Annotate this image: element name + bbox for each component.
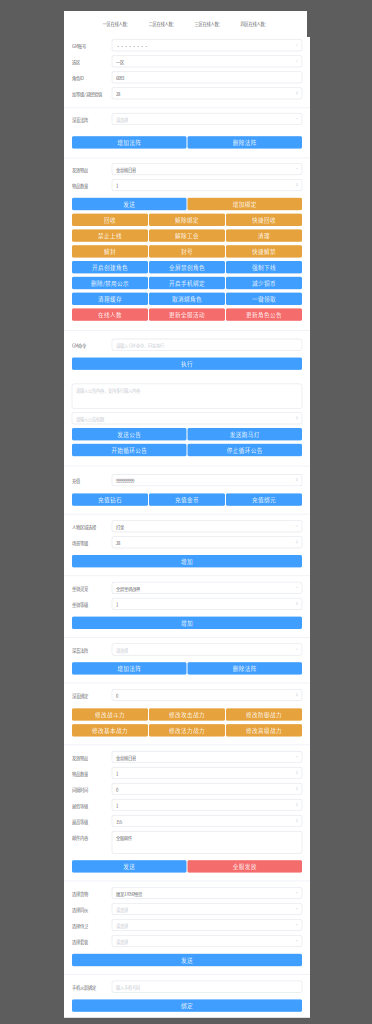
staticText: GM命令 xyxy=(72,342,86,349)
button[interactable]: 解封 xyxy=(72,245,148,258)
staticText: 执行 xyxy=(181,360,193,368)
button[interactable]: 在线人数 xyxy=(72,308,148,321)
staticText: 全服邮件 xyxy=(116,835,132,841)
button[interactable]: 增加 xyxy=(72,555,302,567)
button[interactable]: 强制下线 xyxy=(226,261,302,273)
staticText: 魔龙17050怪兽 xyxy=(116,891,142,897)
button[interactable]: 发送 xyxy=(72,198,186,210)
staticText: 删除法阵 xyxy=(233,138,257,146)
staticText: ⌄ xyxy=(295,937,299,942)
button[interactable]: 充值钻石 xyxy=(72,493,148,506)
button[interactable]: 封号 xyxy=(149,245,225,258)
button[interactable]: 开始循环公告 xyxy=(72,444,186,456)
staticText: 绑定 xyxy=(181,1001,193,1010)
button[interactable]: 增加法阵 xyxy=(72,662,186,675)
button[interactable]: 取消绑角色 xyxy=(149,293,225,305)
staticText: ⌄ xyxy=(295,889,299,894)
staticText: 全服发放 xyxy=(233,862,257,870)
staticText: ⇳ xyxy=(295,415,299,420)
button[interactable]: 四区在线人数： xyxy=(231,21,277,27)
button[interactable]: 修改攻击战力 xyxy=(149,708,225,721)
button[interactable]: 执行 xyxy=(72,357,302,370)
staticText: 删除/禁用公示 xyxy=(91,279,129,287)
button[interactable]: 发送 xyxy=(72,860,186,873)
staticText: 开启手机绑定 xyxy=(169,279,205,287)
button[interactable]: 充值金币 xyxy=(149,493,225,506)
button[interactable]: 减少铜币 xyxy=(226,277,302,289)
staticText: 人物区域选择 xyxy=(72,524,96,530)
button[interactable]: 删除/禁用公示 xyxy=(72,277,148,289)
button[interactable]: 删除法阵 xyxy=(187,136,302,149)
button[interactable]: 修改战斗力 xyxy=(72,708,148,721)
button[interactable]: 修改高级战力 xyxy=(226,724,302,736)
staticText: 最高等级 xyxy=(72,819,88,825)
staticText: 停止循环公告 xyxy=(227,446,263,454)
staticText: 发放物品 xyxy=(72,755,88,761)
staticText: 金丝楠日晷 xyxy=(116,755,136,761)
staticText: 一区 xyxy=(116,59,124,65)
staticText: 强制下线 xyxy=(252,263,276,271)
staticText: 清理 xyxy=(258,231,270,240)
staticText: 最低等级 xyxy=(72,803,88,809)
button[interactable]: 修改防御战力 xyxy=(226,708,302,721)
button[interactable]: 全屏禁创角色 xyxy=(149,261,225,273)
button[interactable]: 一区在线人数： xyxy=(93,21,139,27)
staticText: 充值金币 xyxy=(175,495,199,504)
button[interactable]: 回收 xyxy=(72,214,148,226)
button[interactable]: 发送公告 xyxy=(72,428,186,440)
staticText: ⌄ xyxy=(295,753,299,758)
staticText: 三区在线人数： xyxy=(194,21,222,27)
staticText: 禁止上线 xyxy=(98,231,122,240)
staticText: 减少铜币 xyxy=(252,279,276,287)
button[interactable]: 二区在线人数： xyxy=(139,21,185,27)
button[interactable]: 快捷解禁 xyxy=(226,245,302,258)
staticText: 开始循环公告 xyxy=(111,446,147,454)
button[interactable]: 更新角色公告 xyxy=(226,308,302,321)
button[interactable]: 增加 xyxy=(72,617,302,629)
staticText: 请选择 xyxy=(116,117,128,123)
button[interactable]: 增加法阵 xyxy=(72,136,186,149)
staticText: 一键领取 xyxy=(252,295,276,303)
staticText: 封号 xyxy=(181,247,193,255)
button[interactable]: 修改基本战力 xyxy=(72,724,148,736)
button[interactable]: 充值绑元 xyxy=(226,493,302,506)
staticText: 1 xyxy=(116,771,118,777)
button[interactable]: 三区在线人数： xyxy=(185,21,231,27)
button[interactable]: 修改法力战力 xyxy=(149,724,225,736)
staticText: 一区在线人数： xyxy=(102,21,130,27)
staticText: 场景等级 xyxy=(72,540,88,546)
staticText: 选择同伙 xyxy=(72,907,88,913)
staticText: 回收 xyxy=(104,216,116,224)
staticText: 手机火影绑定 xyxy=(72,984,96,991)
staticText: 物品数量 xyxy=(72,183,88,189)
staticText: ⌄ xyxy=(295,921,299,926)
staticText: 取消绑角色 xyxy=(172,295,202,303)
button[interactable]: 清理缓存 xyxy=(72,293,148,305)
button[interactable]: 增加绑定 xyxy=(187,198,302,210)
staticText: 发送 xyxy=(123,200,135,208)
button[interactable]: 解除工会 xyxy=(149,229,225,242)
button[interactable]: 更新全服活动 xyxy=(149,308,225,321)
button[interactable]: 快捷回收 xyxy=(226,214,302,226)
button[interactable]: 清理 xyxy=(226,229,302,242)
staticText: 发送跑马灯 xyxy=(230,430,260,438)
button[interactable]: 禁止上线 xyxy=(72,229,148,242)
button[interactable]: 全服发放 xyxy=(187,860,302,873)
button[interactable]: 开启创建角色 xyxy=(72,261,148,273)
button[interactable]: 绑定 xyxy=(72,999,302,1012)
button[interactable]: 停止循环公告 xyxy=(187,444,302,456)
button[interactable]: 一键领取 xyxy=(226,293,302,305)
staticText: 深蓝法阵 xyxy=(72,647,88,653)
button[interactable]: 发送跑马灯 xyxy=(187,428,302,440)
staticText: 坐骑等级 xyxy=(72,602,88,608)
staticText: 充值绑元 xyxy=(252,495,276,504)
staticText: 请输入公告标题 xyxy=(76,416,104,422)
staticText: 发放物品 xyxy=(72,167,88,173)
staticText: 二区在线人数： xyxy=(148,21,176,27)
button[interactable]: 开启手机绑定 xyxy=(149,277,225,289)
staticText: 更新全服活动 xyxy=(169,310,205,319)
button[interactable]: 发送 xyxy=(72,954,302,966)
button[interactable]: 解除绑定 xyxy=(149,214,225,226)
staticText: •••••••• xyxy=(116,43,148,49)
button[interactable]: 删除法阵 xyxy=(187,662,302,675)
